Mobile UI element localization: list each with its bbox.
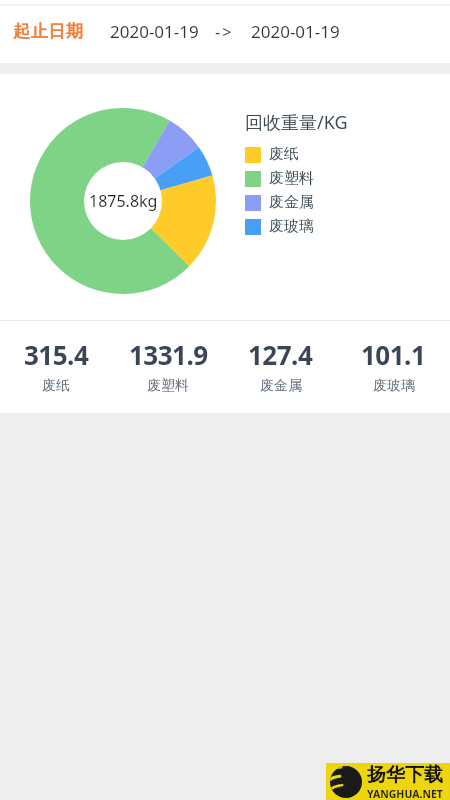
staticText: -> — [215, 21, 234, 43]
staticText: 起止日期 — [13, 21, 83, 42]
staticText: 2020-01-19 — [110, 20, 199, 43]
staticText: 废纸 — [42, 377, 70, 395]
staticText: 废纸 — [269, 145, 299, 164]
staticText: 废玻璃 — [373, 377, 415, 395]
button[interactable]: 扬华下载 — [326, 763, 450, 800]
button[interactable]: 101.1 — [337, 337, 450, 395]
staticText: 废塑料 — [269, 169, 314, 188]
staticText: 1331.9 — [129, 337, 208, 372]
staticText: 1875.8kg — [89, 190, 158, 212]
staticText: YANGHUA.NET — [367, 787, 443, 800]
staticText: 2020-01-19 — [251, 20, 340, 43]
button[interactable]: 315.4 — [0, 337, 112, 395]
button[interactable]: 127.4 — [224, 337, 337, 395]
staticText: 127.4 — [248, 337, 313, 372]
staticText: 废金属 — [260, 377, 302, 395]
staticText: 废玻璃 — [269, 217, 314, 236]
staticText: 废金属 — [269, 193, 314, 212]
staticText: 315.4 — [24, 337, 89, 372]
button[interactable]: 1331.9 — [112, 337, 224, 395]
staticText: 回收重量/KG — [245, 110, 348, 135]
staticText: 废塑料 — [147, 377, 189, 395]
staticText: 扬华下载 — [367, 763, 443, 787]
staticText: 101.1 — [361, 337, 426, 372]
button[interactable]: 起止日期 — [0, 0, 450, 63]
